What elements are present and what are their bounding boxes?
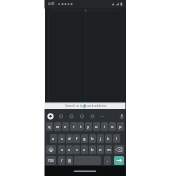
staticText: ?123 [48,159,54,163]
button[interactable]: ?123 [46,156,56,165]
staticText: j [100,136,102,141]
button[interactable]: j [97,134,104,143]
staticText: a [52,136,55,141]
button[interactable]: c [73,145,80,154]
staticText: n [99,147,102,152]
staticText: . [107,158,109,163]
button[interactable]: t [77,122,84,131]
button[interactable]: g [81,134,88,143]
button[interactable]: Search or type web address [45,103,126,109]
button[interactable]: d [66,134,73,143]
button[interactable]: y [85,122,92,131]
staticText: p [119,124,122,129]
staticText: e [64,124,67,129]
button[interactable]: a [50,134,57,143]
staticText: @ [68,158,72,163]
button[interactable]: k [105,134,112,143]
button[interactable]: n [97,145,104,154]
button[interactable]: o [109,122,116,131]
button[interactable]: l [113,134,120,143]
button[interactable]: z [58,145,65,154]
staticText: d [68,136,71,141]
staticText: x [68,147,71,152]
button[interactable]: v [81,145,88,154]
button[interactable]: p [117,122,124,131]
staticText: r [73,124,75,129]
button[interactable]: m [105,145,112,154]
staticText: 4:30 [48,2,55,6]
staticText: l [116,136,118,141]
staticText: b [91,147,94,152]
staticText: h [91,136,94,141]
button[interactable]: q [46,122,53,131]
button[interactable] [46,145,56,154]
staticText: o [111,124,114,129]
staticText: f [76,136,78,141]
staticText: q [48,124,51,129]
staticText: k [107,136,110,141]
button[interactable]: u [93,122,100,131]
button[interactable]: b [89,145,96,154]
button[interactable]: @ [66,156,73,165]
staticText: s [61,136,63,141]
button[interactable]: w [54,122,61,131]
button[interactable]: s [58,134,65,143]
staticText: Search or type web address [65,104,107,108]
staticText: u [95,124,98,129]
button[interactable] [114,145,124,154]
button[interactable] [114,156,124,165]
button[interactable]: e [62,122,69,131]
staticText: t [80,124,82,129]
staticText: z [61,147,63,152]
staticText: y [87,124,90,129]
staticText: m [107,147,111,152]
staticText: g [83,136,86,141]
staticText: v [83,147,86,152]
button[interactable]: f [73,134,80,143]
staticText: w [56,124,60,129]
button[interactable]: i [101,122,108,131]
button[interactable]: . [104,156,111,165]
button[interactable]: r [70,122,77,131]
staticText: / [61,158,63,163]
button[interactable]: x [66,145,73,154]
button[interactable]: h [89,134,96,143]
staticText: c [76,147,78,152]
button[interactable]: / [58,156,65,165]
staticText: i [104,124,106,129]
